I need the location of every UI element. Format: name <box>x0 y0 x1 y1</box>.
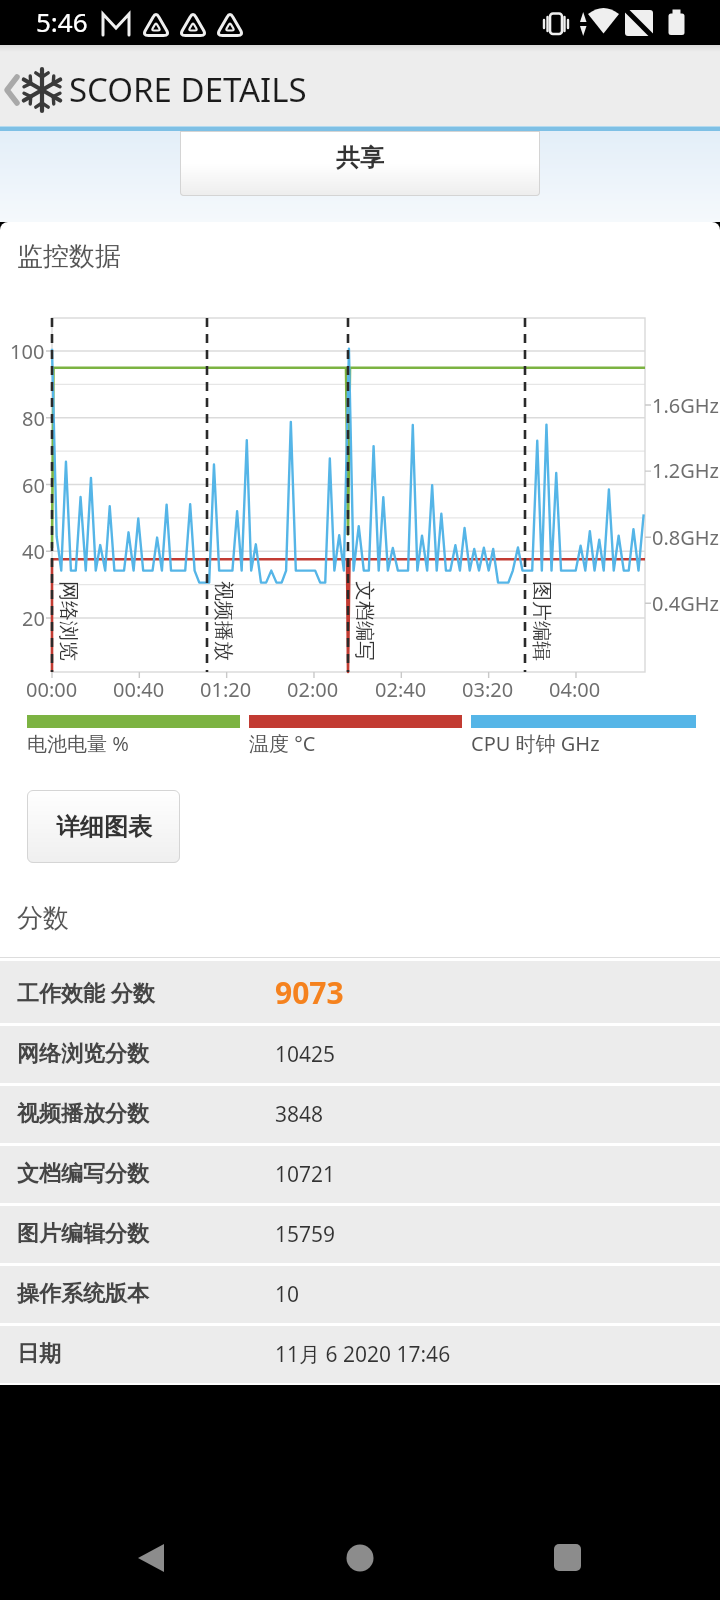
staticText: 0.4GHz <box>652 590 720 617</box>
button[interactable]: 日期 <box>0 1326 720 1383</box>
button[interactable]: 图片编辑分数 <box>0 1206 720 1263</box>
staticText: 80 <box>22 405 45 432</box>
staticText: 10 <box>275 1280 300 1309</box>
staticText: 操作系统版本 <box>17 1280 149 1308</box>
button[interactable]: 文档编写分数 <box>0 1146 720 1203</box>
button[interactable]: 操作系统版本 <box>0 1266 720 1323</box>
staticText: 1.2GHz <box>652 457 720 484</box>
staticText: 图片编辑 <box>530 574 554 668</box>
staticText: 电池电量 % <box>27 730 129 757</box>
button[interactable]: 工作效能 分数 <box>0 961 720 1023</box>
staticText: 20 <box>22 605 45 632</box>
staticText: 3848 <box>275 1100 324 1129</box>
staticText: 工作效能 分数 <box>17 977 155 1007</box>
staticText: 0.8GHz <box>652 524 720 551</box>
staticText: 网络浏览分数 <box>17 1040 149 1068</box>
staticText: 网络浏览 <box>57 574 81 668</box>
staticText: 40 <box>22 538 45 565</box>
button[interactable] <box>522 1520 612 1600</box>
staticText: 图片编辑分数 <box>17 1220 149 1248</box>
button[interactable] <box>0 45 130 127</box>
staticText: 01:20 <box>200 676 252 703</box>
staticText: 详细图表 <box>56 812 152 842</box>
staticText: SCORE DETAILS <box>69 67 307 112</box>
staticText: 04:00 <box>549 676 601 703</box>
staticText: 100 <box>10 338 45 365</box>
staticText: 9073 <box>275 972 344 1013</box>
staticText: 10721 <box>275 1160 336 1189</box>
staticText: 60 <box>22 472 45 499</box>
button[interactable]: 详细图表 <box>27 790 180 863</box>
staticText: 温度 °C <box>249 730 316 757</box>
staticText: 02:40 <box>375 676 427 703</box>
staticText: 15759 <box>275 1220 336 1249</box>
staticText: 11月 6 2020 17:46 <box>275 1340 451 1369</box>
staticText: 00:00 <box>26 676 78 703</box>
staticText: 1.6GHz <box>652 392 720 419</box>
staticText: 02:00 <box>287 676 339 703</box>
staticText: 10425 <box>275 1040 336 1069</box>
staticText: 日期 <box>17 1340 61 1368</box>
staticText: 文档编写分数 <box>17 1160 149 1188</box>
staticText: 03:20 <box>462 676 514 703</box>
button[interactable]: 网络浏览分数 <box>0 1026 720 1083</box>
staticText: CPU 时钟 GHz <box>471 730 600 757</box>
staticText: 分数 <box>17 902 69 935</box>
button[interactable] <box>110 1520 200 1600</box>
staticText: 监控数据 <box>17 240 121 273</box>
button[interactable]: 共享 <box>180 131 540 196</box>
staticText: 5:46 <box>36 4 88 39</box>
button[interactable] <box>315 1520 405 1600</box>
staticText: 00:40 <box>113 676 165 703</box>
staticText: 视频播放 <box>212 574 236 668</box>
staticText: 文档编写 <box>353 574 377 668</box>
staticText: 共享 <box>336 143 384 173</box>
staticText: 视频播放分数 <box>17 1100 149 1128</box>
button[interactable]: 视频播放分数 <box>0 1086 720 1143</box>
